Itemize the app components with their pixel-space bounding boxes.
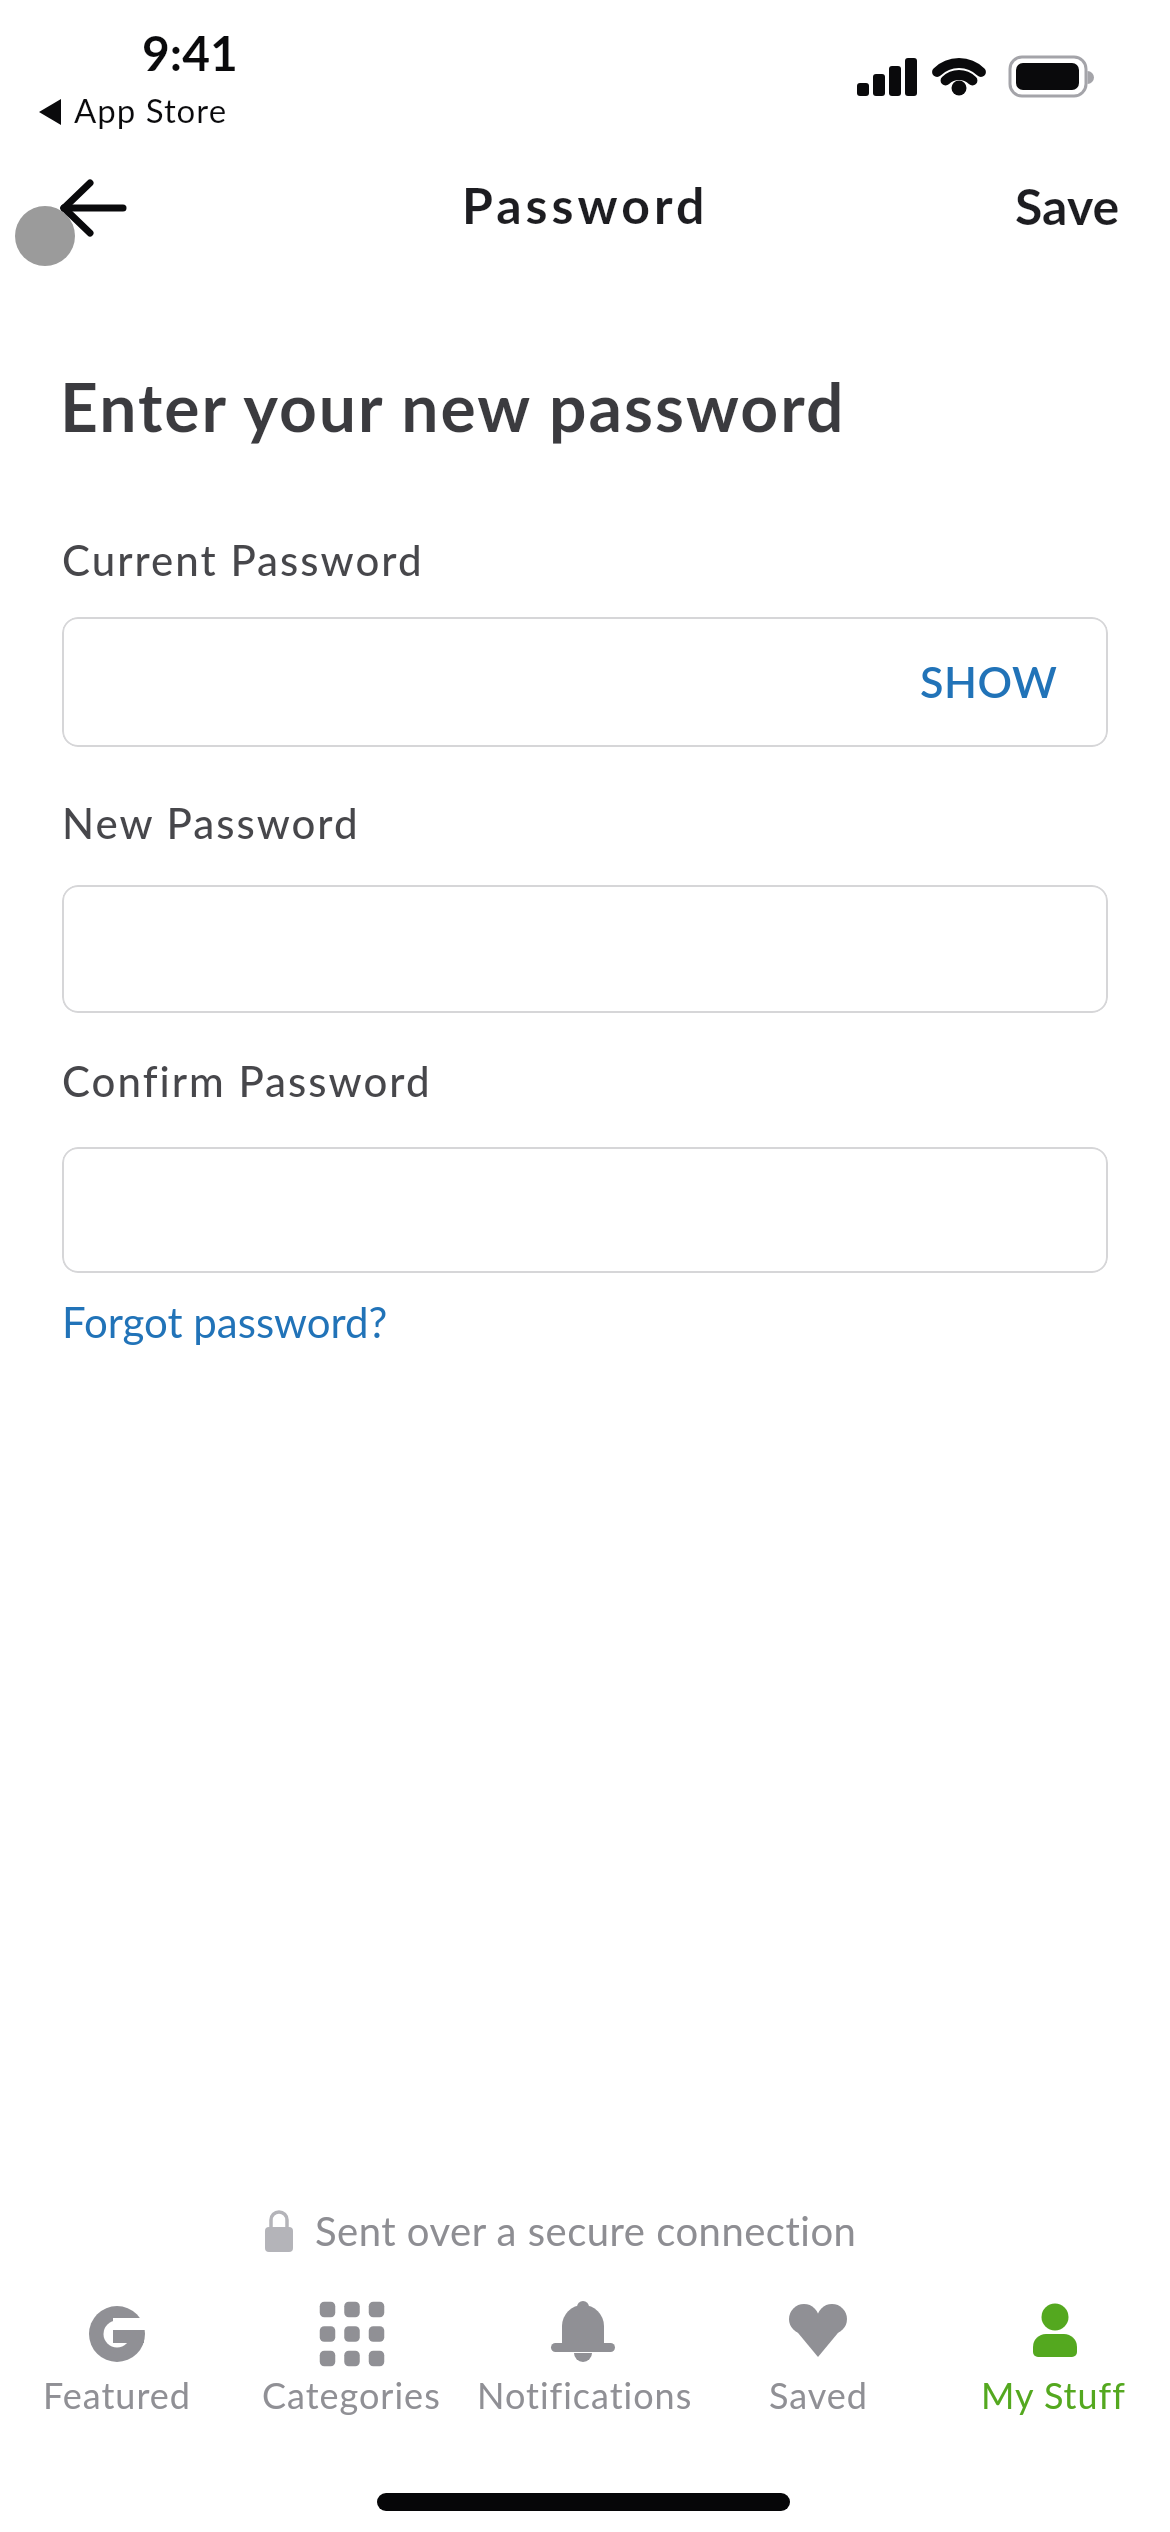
staticText: SHOW bbox=[920, 656, 1058, 708]
button[interactable]: Save bbox=[985, 158, 1150, 253]
staticText: Forgot password? bbox=[62, 1297, 388, 1347]
button[interactable] bbox=[62, 1147, 1108, 1273]
staticText: Categories bbox=[262, 2373, 441, 2416]
button[interactable]: SHOW bbox=[908, 646, 1070, 718]
button[interactable]: Forgot password? bbox=[50, 1285, 400, 1359]
staticText: Sent over a secure connection bbox=[315, 2207, 857, 2255]
staticText: Password bbox=[462, 175, 709, 235]
button[interactable]: Saved bbox=[702, 2278, 936, 2420]
staticText: Save bbox=[1015, 176, 1120, 236]
button[interactable]: Notifications bbox=[468, 2278, 702, 2420]
button[interactable]: SHOW bbox=[62, 617, 1108, 747]
button[interactable]: Categories bbox=[234, 2278, 468, 2420]
staticText: 9:41 bbox=[142, 24, 238, 82]
button[interactable] bbox=[20, 158, 140, 263]
staticText: Featured bbox=[43, 2373, 191, 2416]
staticText: App Store bbox=[74, 90, 228, 130]
staticText: Notifications bbox=[477, 2373, 693, 2416]
button[interactable]: Featured bbox=[0, 2278, 234, 2420]
staticText: New Password bbox=[62, 798, 360, 848]
staticText: Saved bbox=[769, 2373, 869, 2416]
staticText: My Stuff bbox=[981, 2373, 1126, 2416]
staticText: Current Password bbox=[62, 535, 424, 585]
button[interactable]: My Stuff bbox=[936, 2278, 1170, 2420]
staticText: Confirm Password bbox=[62, 1056, 432, 1106]
button[interactable] bbox=[62, 885, 1108, 1013]
staticText: Enter your new password bbox=[60, 367, 846, 446]
